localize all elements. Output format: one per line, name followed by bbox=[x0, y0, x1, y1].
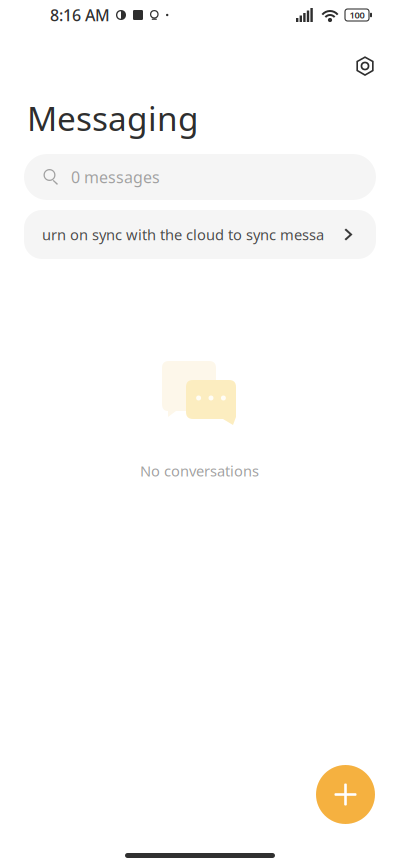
button[interactable]: 0 messages bbox=[24, 154, 376, 200]
staticText: 8:16 AM bbox=[50, 4, 110, 26]
button[interactable]: New message bbox=[316, 765, 375, 824]
staticText: 0 messages bbox=[71, 166, 160, 188]
staticText: Messaging bbox=[27, 96, 199, 140]
staticText: 100 bbox=[349, 9, 364, 21]
button[interactable]: urn on sync with the cloud to sync messa bbox=[24, 210, 376, 259]
button[interactable]: Settings bbox=[344, 45, 386, 87]
staticText: No conversations bbox=[140, 461, 259, 480]
staticText: urn on sync with the cloud to sync messa bbox=[42, 225, 324, 244]
